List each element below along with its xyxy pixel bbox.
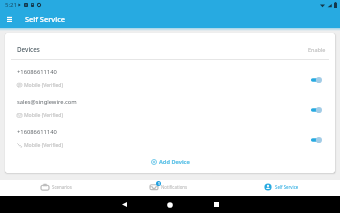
button[interactable]: sales@singlewire.com	[5, 90, 335, 120]
staticText: Self Service	[275, 184, 299, 190]
button[interactable]: Enable device	[309, 134, 325, 146]
staticText: +16086611140	[17, 68, 57, 76]
staticText: Scenarios	[52, 184, 72, 190]
button[interactable]: +16086611140	[5, 120, 335, 150]
staticText: Self Service	[25, 14, 66, 24]
staticText: +16086611140	[17, 128, 57, 136]
button[interactable]: Home	[157, 196, 183, 213]
staticText: 5:21	[5, 1, 17, 9]
staticText: Mobile (Verified)	[24, 112, 64, 119]
button[interactable]: Enable device	[309, 104, 325, 116]
button[interactable]: Self Service	[225, 180, 337, 196]
button[interactable]: Back	[111, 196, 137, 213]
button[interactable]: Add Device	[147, 155, 194, 169]
staticText: sales@singlewire.com	[17, 98, 77, 106]
button[interactable]: Scenarios	[0, 180, 113, 196]
staticText: Mobile (Verified)	[24, 82, 64, 89]
staticText: Notifications	[161, 184, 188, 190]
button[interactable]: Enable device	[309, 74, 325, 86]
staticText: Enable	[308, 46, 326, 53]
staticText: Devices	[17, 45, 40, 54]
button[interactable]: Open navigation menu	[0, 10, 18, 28]
staticText: Add Device	[159, 158, 190, 166]
staticText: Mobile (Verified)	[24, 142, 64, 149]
button[interactable]: +16086611140	[5, 60, 335, 90]
button[interactable]: 1	[113, 180, 225, 196]
staticText: 1	[158, 181, 160, 186]
button[interactable]: Recent apps	[203, 196, 229, 213]
